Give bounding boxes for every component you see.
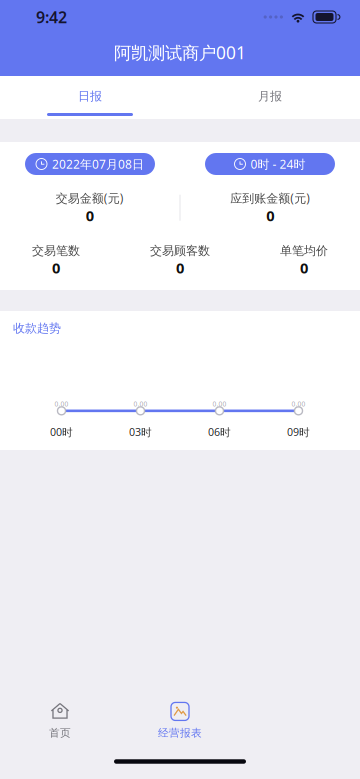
staticText: 0.00 <box>212 399 226 408</box>
staticText: 0.00 <box>291 399 305 408</box>
staticText: 00时 <box>50 425 73 439</box>
button[interactable]: 月报 <box>180 76 360 119</box>
button[interactable]: 经营报表 <box>120 702 240 739</box>
staticText: 0.00 <box>54 399 68 408</box>
staticText: 应到账金额(元) <box>230 190 310 206</box>
staticText: 经营报表 <box>158 726 202 739</box>
staticText: 2022年07月08日 <box>52 156 144 172</box>
staticText: 交易顾客数 <box>150 243 210 258</box>
button[interactable]: 日报 <box>0 76 180 119</box>
staticText: 月报 <box>258 89 282 104</box>
staticText: 0 <box>86 206 94 225</box>
staticText: 0 <box>52 258 60 278</box>
staticText: 06时 <box>208 425 231 439</box>
button[interactable]: 2022年07月08日 <box>25 153 155 175</box>
staticText: 09时 <box>287 425 310 439</box>
staticText: 交易金额(元) <box>56 190 124 206</box>
staticText: 0时 - 24时 <box>250 156 305 172</box>
staticText: 单笔均价 <box>280 243 328 258</box>
staticText: 0 <box>300 258 308 278</box>
staticText: 阿凯测试商户001 <box>114 41 246 64</box>
staticText: 0.00 <box>133 399 147 408</box>
staticText: 03时 <box>129 425 152 439</box>
staticText: 收款趋势 <box>13 321 61 336</box>
staticText: 交易笔数 <box>32 243 80 258</box>
staticText: 0 <box>266 206 274 225</box>
staticText: 0 <box>176 258 184 278</box>
staticText: 9:42 <box>36 6 67 28</box>
button[interactable]: 首页 <box>0 702 120 739</box>
button[interactable]: 0时 - 24时 <box>205 153 335 175</box>
staticText: 日报 <box>78 89 102 104</box>
staticText: 首页 <box>49 726 71 739</box>
